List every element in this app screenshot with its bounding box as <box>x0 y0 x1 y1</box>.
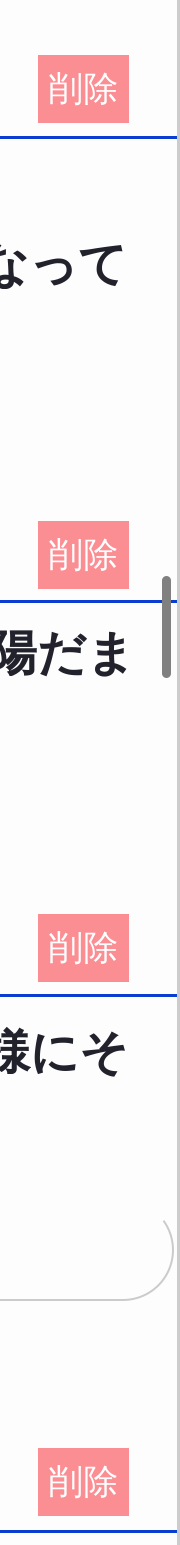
staticText: 削除 <box>48 68 118 110</box>
staticText: 削除 <box>48 1461 118 1503</box>
button[interactable]: 削除 <box>38 55 129 123</box>
staticText: 削除 <box>48 534 118 576</box>
staticText: 様にそ <box>0 1023 128 1082</box>
button[interactable]: 削除 <box>38 914 129 982</box>
staticText: 削除 <box>48 927 118 969</box>
button[interactable]: 削除 <box>38 1448 129 1516</box>
staticText: なって <box>0 235 127 294</box>
button[interactable]: 削除 <box>38 521 129 589</box>
staticText: 陽だま <box>0 624 135 683</box>
